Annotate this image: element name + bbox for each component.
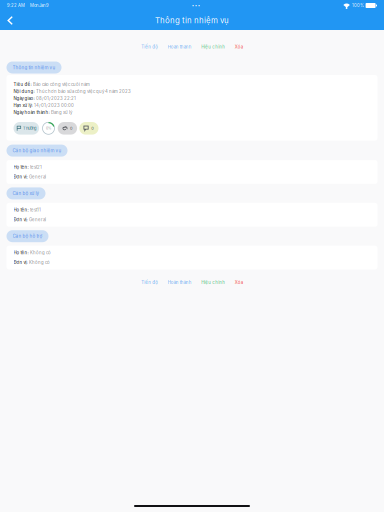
- button[interactable]: Xóa: [235, 280, 243, 285]
- staticText: Cán bộ hỗ trợ: [12, 233, 42, 239]
- button[interactable]: Hoàn thành: [168, 44, 192, 50]
- staticText: Mon Jan 9: [30, 3, 49, 8]
- staticText: Cán bộ xử lý: [12, 191, 39, 196]
- button[interactable]: Hiệu chỉnh: [201, 280, 225, 285]
- staticText: 08/01/2023 22:21: [36, 96, 76, 101]
- staticText: Tiến độ: [141, 280, 158, 285]
- staticText: Đơn vị:: [13, 217, 27, 222]
- staticText: Ngày giao:: [13, 96, 34, 101]
- staticText: Xóa: [235, 280, 243, 285]
- staticText: Đang xử lý: [51, 110, 72, 115]
- staticText: Hoàn thành: [168, 280, 192, 285]
- staticText: General: [29, 217, 46, 222]
- staticText: test21: [30, 164, 42, 170]
- staticText: Hiệu chỉnh: [201, 44, 225, 50]
- staticText: Hoàn thành: [168, 44, 192, 50]
- button[interactable]: Hiệu chỉnh: [201, 44, 225, 50]
- staticText: 0%: [46, 126, 51, 130]
- staticText: Không có: [30, 250, 51, 255]
- staticText: Tiến độ: [141, 44, 158, 50]
- staticText: 0: [70, 126, 73, 131]
- staticText: Xóa: [235, 44, 243, 50]
- staticText: Thông tin nhiệm vụ: [12, 65, 55, 70]
- staticText: test11: [30, 207, 41, 212]
- button[interactable]: Back: [0, 11, 27, 30]
- staticText: Thông tin nhiệm vụ: [155, 16, 229, 25]
- staticText: Cán bộ giao nhiệm vụ: [12, 148, 61, 153]
- button[interactable]: Tiến độ: [141, 280, 158, 285]
- staticText: Tiêu đề:: [13, 82, 31, 87]
- button[interactable]: Xóa: [235, 44, 243, 50]
- staticText: Hạn xử lý:: [13, 103, 32, 108]
- staticText: Đơn vị:: [13, 260, 27, 265]
- staticText: Hiệu chỉnh: [201, 280, 225, 285]
- staticText: Đơn vị:: [13, 174, 27, 179]
- staticText: Họ tên:: [13, 250, 28, 255]
- staticText: 100%: [352, 3, 364, 8]
- staticText: Thường: [23, 126, 36, 131]
- staticText: Báo cáo công việc cuối năm: [33, 82, 90, 87]
- staticText: 0: [91, 126, 94, 131]
- staticText: Nội dung:: [13, 89, 34, 94]
- staticText: Không có: [29, 260, 50, 265]
- staticText: 9:22 AM: [7, 3, 25, 8]
- staticText: Thúc hơn báo sửa công việc quý 4 năm 202…: [36, 89, 131, 94]
- staticText: Họ tên:: [13, 164, 28, 170]
- staticText: Ngày hoàn thành:: [13, 110, 49, 115]
- staticText: Họ tên:: [13, 207, 28, 212]
- button[interactable]: Tiến độ: [141, 44, 158, 50]
- staticText: • • •: [192, 3, 200, 8]
- staticText: General: [29, 174, 46, 179]
- staticText: 14/01/2023 00:00: [34, 103, 74, 108]
- button[interactable]: Hoàn thành: [168, 280, 192, 285]
